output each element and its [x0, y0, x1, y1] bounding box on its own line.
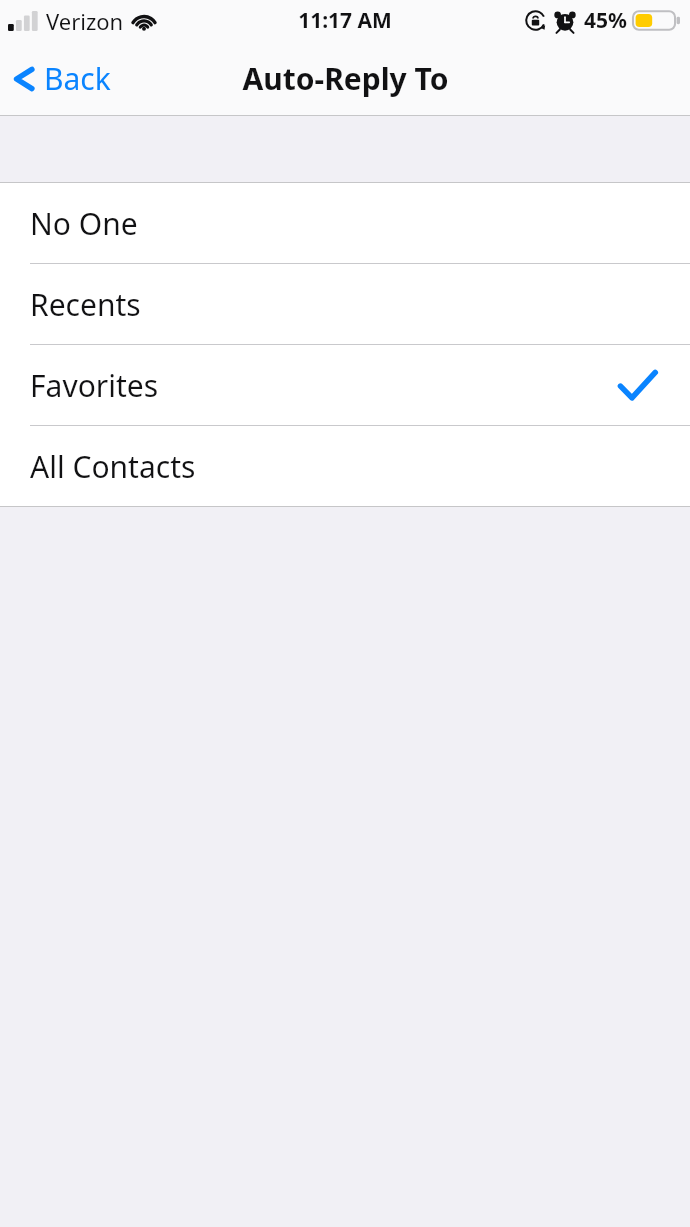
staticText: Auto-Reply To: [242, 58, 449, 99]
other: Battery 45 percent, Low Power Mode: [633, 9, 680, 32]
other: Alarm: [554, 10, 576, 32]
other: Rotation lock: [525, 10, 546, 31]
staticText: Verizon: [46, 6, 124, 36]
button[interactable]: Recents: [0, 264, 690, 344]
button[interactable]: No One: [0, 183, 690, 263]
staticText: Back: [44, 58, 111, 99]
staticText: Recents: [30, 284, 141, 325]
button[interactable]: Favorites: [0, 345, 690, 425]
button[interactable]: All Contacts: [0, 426, 690, 506]
staticText: No One: [30, 203, 138, 244]
other: Selected: [619, 370, 656, 401]
staticText: 45%: [584, 6, 627, 35]
staticText: 11:17 AM: [298, 6, 392, 35]
staticText: All Contacts: [30, 446, 196, 487]
staticText: Favorites: [30, 365, 159, 406]
button[interactable]: Back: [0, 50, 125, 107]
